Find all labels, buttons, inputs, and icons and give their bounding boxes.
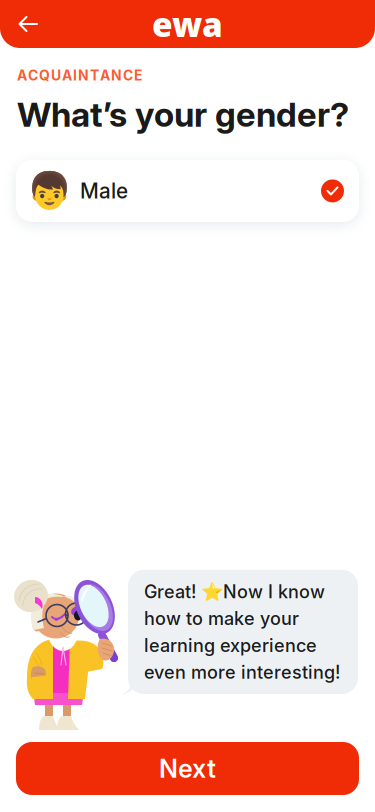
staticText: What’s your gender? (17, 94, 349, 135)
staticText: A C Q U A I N T A N C E (17, 67, 142, 84)
button[interactable]: 👦 (16, 160, 359, 222)
button[interactable]: Back (0, 0, 52, 47)
staticText: 👦 (26, 170, 71, 212)
staticText: Male (80, 178, 128, 203)
staticText: Next (159, 753, 216, 784)
staticText: Great! ⭐️Now I know how to make your lea… (144, 581, 340, 683)
staticText: ewa (152, 1, 223, 47)
button[interactable]: Next (16, 742, 359, 795)
